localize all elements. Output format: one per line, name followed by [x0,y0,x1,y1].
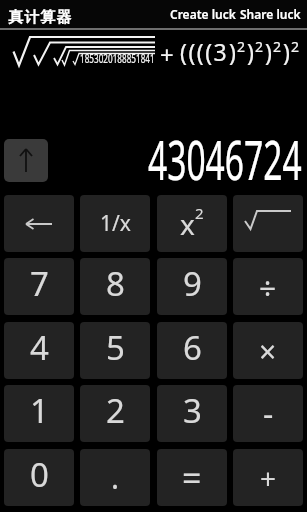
staticText: × [259,331,277,372]
staticText: 真计算器 [8,8,72,27]
button[interactable]: 4 [4,322,74,379]
button[interactable]: 2 [80,385,150,442]
button[interactable] [4,139,48,182]
staticText: - [263,392,274,436]
staticText: 2 [291,37,301,56]
staticText: 8 [106,261,125,306]
button[interactable]: 1 [4,385,74,442]
button[interactable]: 6 [157,322,227,379]
staticText: + [160,38,180,71]
staticText: + [260,459,277,497]
button[interactable]: + [233,449,303,506]
staticText: 6 [183,325,202,370]
staticText: 2 [195,203,204,223]
button[interactable] [4,195,74,252]
staticText: 4 [30,325,49,370]
staticText: 2 [106,388,125,433]
staticText: 0 [30,452,49,497]
button[interactable]: . [80,449,150,506]
button[interactable]: 1/x [80,195,150,252]
button[interactable]: 0 [4,449,74,506]
button[interactable]: Create luck [168,6,238,22]
staticText: x [180,205,195,243]
staticText: 7 [30,261,49,306]
staticText: 2 [255,37,265,56]
button[interactable]: 7 [4,258,74,315]
button[interactable]: ÷ [233,258,303,315]
button[interactable]: 8 [80,258,150,315]
staticText: = [182,455,202,501]
button[interactable]: - [233,385,303,442]
staticText: . [111,457,120,498]
staticText: Create luck [170,6,236,22]
staticText: ) [229,36,237,67]
staticText: ) [283,36,291,67]
button[interactable]: × [233,322,303,379]
button[interactable]: Share luck [238,6,303,22]
staticText: 9 [183,261,202,306]
staticText: ) [247,36,255,67]
staticText: ) [265,36,273,67]
staticText: 2 [237,37,247,56]
staticText: 1 [30,388,49,433]
staticText: 2 [273,37,283,56]
button[interactable]: 9 [157,258,227,315]
staticText: ÷ [259,268,277,309]
staticText: 43046724 [148,122,302,197]
button[interactable]: 5 [80,322,150,379]
staticText: ((((3 [180,36,229,67]
staticText: 5 [106,325,125,370]
button[interactable]: x [157,195,227,252]
button[interactable]: = [157,449,227,506]
button[interactable]: 3 [157,385,227,442]
button[interactable] [233,195,303,252]
staticText: 3 [183,388,202,433]
staticText: Share luck [240,6,301,22]
staticText: 1/x [100,209,131,238]
staticText: 1853020188851841 [80,50,155,66]
